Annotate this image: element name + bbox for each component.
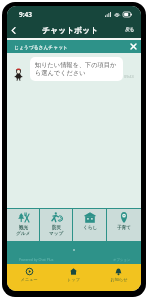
button[interactable]: Close xyxy=(128,41,139,52)
staticText: 観光 xyxy=(19,225,29,231)
staticText: グルメ xyxy=(16,231,31,237)
button[interactable]: お知らせ xyxy=(96,264,141,291)
staticText: トップ xyxy=(67,277,80,282)
staticText: くらし xyxy=(83,225,98,231)
staticText: 知りたい情報を、下の項目から選んでください xyxy=(35,61,118,77)
button[interactable]: Back xyxy=(7,22,20,38)
staticText: マップ xyxy=(49,231,64,237)
button[interactable]: メニュー xyxy=(7,264,51,291)
button[interactable]: 防災 xyxy=(40,209,73,241)
staticText: じょうづるさんチャット xyxy=(14,44,69,50)
staticText: チャットボット xyxy=(42,25,98,35)
staticText: メニュー xyxy=(20,277,38,282)
button[interactable]: 戻る xyxy=(119,22,141,38)
button[interactable]: くらし xyxy=(73,209,107,241)
button[interactable]: 子育て xyxy=(107,209,141,241)
staticText: 戻る xyxy=(125,27,135,33)
staticText: お知らせ xyxy=(110,277,128,282)
button[interactable]: 観光 xyxy=(7,209,40,241)
button[interactable]: トップ xyxy=(51,264,96,291)
staticText: Powered by Chat Plus xyxy=(19,257,54,262)
staticText: 防災 xyxy=(52,225,62,231)
staticText: 9:43 xyxy=(19,10,32,19)
staticText: 子育て xyxy=(117,225,131,231)
staticText: オプション xyxy=(113,258,131,262)
staticText: 09:43 xyxy=(124,74,134,79)
